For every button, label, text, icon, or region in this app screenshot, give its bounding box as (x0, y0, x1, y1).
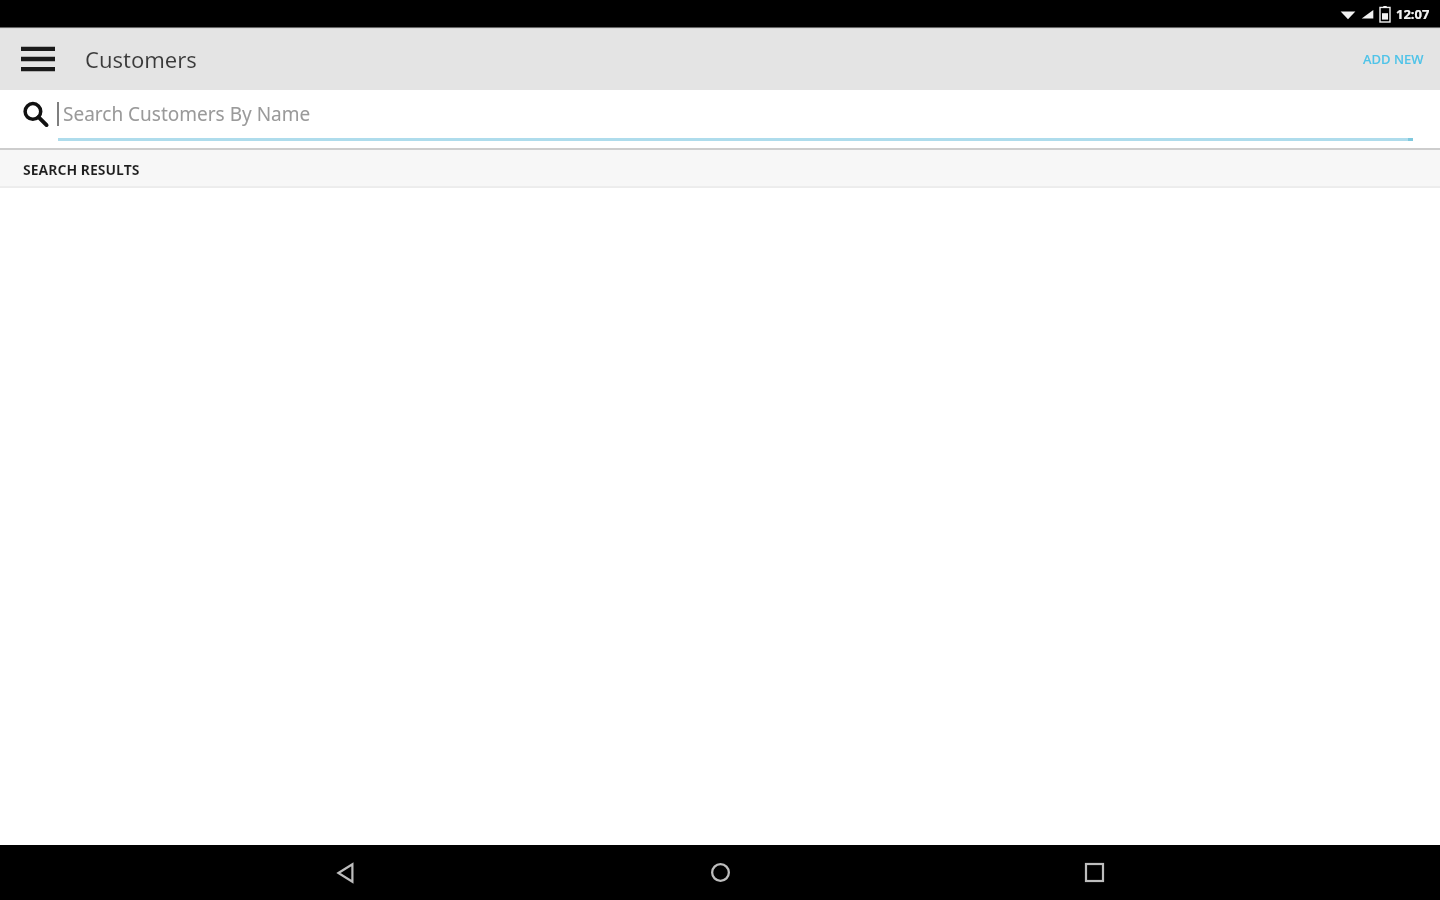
button[interactable]: Recent apps (1066, 845, 1122, 900)
staticText: 12:07 (1396, 5, 1430, 23)
other: Search (20, 99, 50, 129)
button[interactable]: ADD NEW (1355, 40, 1432, 78)
button[interactable]: Search (0, 90, 1440, 138)
staticText: SEARCH RESULTS (23, 160, 140, 179)
staticText: Customers (85, 44, 197, 74)
staticText: ADD NEW (1363, 50, 1424, 68)
button[interactable]: Open navigation menu (14, 35, 62, 83)
button[interactable]: Back (318, 845, 374, 900)
staticText: Search Customers By Name (63, 101, 311, 127)
button[interactable]: Home (692, 845, 748, 900)
